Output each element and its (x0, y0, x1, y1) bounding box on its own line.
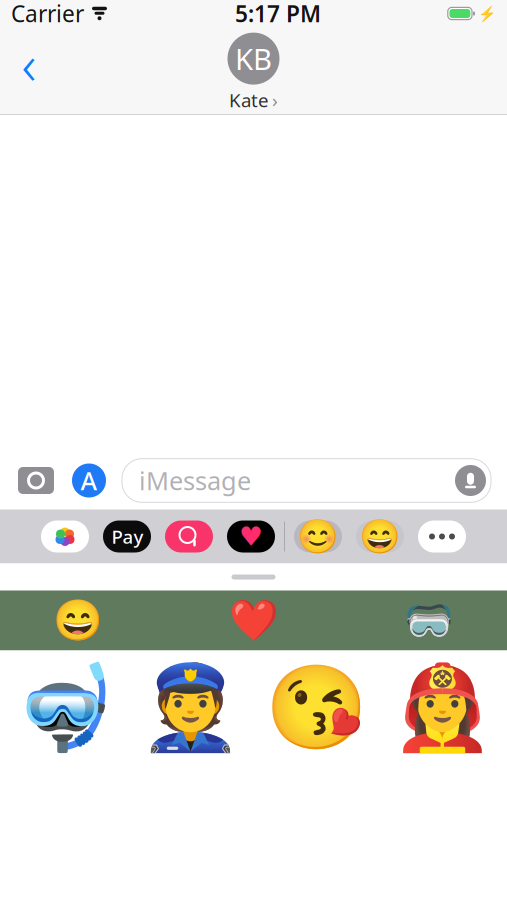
staticText: › (272, 88, 278, 112)
staticText: KB (235, 39, 272, 78)
staticText: 🤿 (13, 660, 116, 755)
staticText: ‹ (21, 26, 36, 100)
button[interactable]: Sticker pack (349, 509, 411, 563)
button[interactable]: App Store (70, 461, 108, 499)
button[interactable]: Image Search (158, 509, 220, 563)
staticText: Carrier (11, 0, 84, 28)
button[interactable]: Photos (34, 509, 96, 563)
button[interactable]: Sticker pack (287, 509, 349, 563)
staticText: A (80, 464, 97, 497)
staticText: ⚡ (478, 5, 496, 22)
button[interactable]: Back (6, 33, 52, 93)
button[interactable]: Apple Pay (96, 509, 158, 563)
button[interactable]: Kate, contact details (227, 33, 279, 112)
button[interactable]: Recent sticker (369, 590, 489, 650)
staticText: iMessage (139, 464, 251, 497)
staticText: ♥ (239, 521, 263, 552)
staticText: 😘 (265, 660, 368, 755)
staticText: Pay (111, 524, 143, 549)
button[interactable]: Kiss sticker (253, 661, 379, 753)
button[interactable]: Officer sticker (127, 661, 253, 753)
staticText: ❤️ (228, 598, 278, 643)
staticText: 5:17 PM (235, 0, 321, 28)
button[interactable]: More apps (411, 509, 473, 563)
staticText: 😄 (53, 598, 103, 643)
button[interactable]: Recent sticker (18, 590, 138, 650)
staticText: 😊 (297, 517, 339, 556)
staticText: 👮 (139, 660, 242, 755)
button[interactable]: Heart sticker (193, 590, 313, 650)
button[interactable]: Camera (16, 464, 56, 496)
staticText: 👩‍🚒 (391, 660, 494, 755)
staticText: 😄 (359, 517, 401, 556)
button[interactable]: Digital Touch (220, 509, 282, 563)
staticText: Kate (229, 88, 269, 112)
button[interactable]: Firefighter sticker (379, 661, 505, 753)
staticText: 🥽 (404, 598, 454, 643)
button[interactable]: Diver sticker (1, 661, 127, 753)
